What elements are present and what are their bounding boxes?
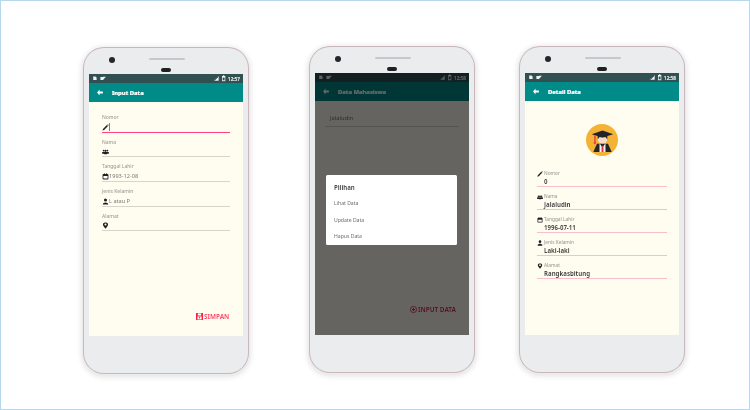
staticText: 12:58 <box>454 75 466 81</box>
staticText: Nama <box>102 139 117 146</box>
button[interactable]: Lihat Data <box>334 200 448 207</box>
staticText: 1993-12-08 <box>109 172 139 180</box>
staticText: Rangkasbitung <box>544 269 591 277</box>
staticText: Alamat <box>102 213 119 220</box>
button[interactable]: Jalaludin <box>325 101 459 126</box>
staticText: Detail Data <box>548 88 581 96</box>
staticText: Hapus Data <box>334 233 362 240</box>
button[interactable]: INPUT DATA <box>408 303 459 316</box>
button[interactable]: Back <box>528 82 544 101</box>
staticText: INPUT DATA <box>418 305 457 314</box>
staticText: 12:58 <box>664 75 676 81</box>
staticText: 1996-07-11 <box>544 223 576 231</box>
staticText: L atau P <box>109 197 130 205</box>
staticText: Alamat <box>544 262 560 269</box>
button[interactable]: Update Data <box>334 217 448 224</box>
button[interactable]: Back <box>318 82 334 101</box>
staticText: Data Mahasiswa <box>338 88 387 96</box>
staticText: Nomor <box>102 114 119 121</box>
staticText: Pilihan <box>334 183 355 191</box>
staticText: Jenis Kelamin <box>102 188 134 195</box>
staticText: Lihat Data <box>334 200 359 207</box>
button[interactable]: Hapus Data <box>334 233 448 240</box>
staticText: Tanggal Lahir <box>544 216 575 223</box>
staticText: Input Data <box>112 89 144 97</box>
staticText: Nama <box>544 193 558 200</box>
staticText: SIMPAN <box>204 312 230 321</box>
staticText: Laki-laki <box>544 246 570 254</box>
staticText: Jalaludin <box>330 114 354 122</box>
staticText: Tanggal Lahir <box>102 163 134 170</box>
staticText: Jenis Kelamin <box>544 239 575 246</box>
staticText: 0 <box>544 177 548 185</box>
staticText: Jalaludin <box>544 200 571 208</box>
staticText: 12:57 <box>228 76 240 82</box>
staticText: Nomor <box>544 170 560 177</box>
staticText: Update Data <box>334 217 365 224</box>
button[interactable]: SIMPAN <box>194 310 232 323</box>
button[interactable]: Back <box>92 83 108 102</box>
